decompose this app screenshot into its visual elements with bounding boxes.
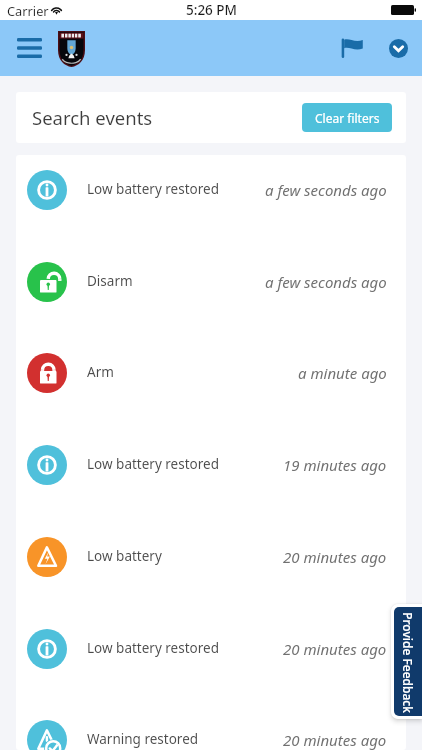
- staticText: Provide Feedback: [400, 612, 416, 713]
- staticText: Disarm: [87, 272, 133, 290]
- staticText: Low battery: [87, 547, 162, 565]
- staticText: Clear filters: [315, 110, 380, 126]
- button[interactable]: Warning restored: [16, 705, 406, 750]
- staticText: Low battery restored: [87, 180, 219, 198]
- staticText: Low battery restored: [87, 639, 219, 657]
- staticText: a few seconds ago: [265, 180, 387, 200]
- staticText: a few seconds ago: [265, 272, 387, 292]
- button[interactable]: Low battery restored: [16, 614, 406, 706]
- button[interactable]: Low battery restored: [16, 155, 406, 247]
- staticText: 20 minutes ago: [283, 639, 387, 659]
- staticText: 20 minutes ago: [283, 730, 387, 750]
- button[interactable]: Provide Feedback: [394, 607, 422, 716]
- button[interactable]: Arm: [16, 338, 406, 430]
- staticText: 5:26 PM: [186, 1, 237, 19]
- button[interactable]: Expand: [378, 28, 418, 68]
- staticText: Low battery restored: [87, 455, 219, 473]
- button[interactable]: Low battery: [16, 522, 406, 614]
- staticText: Search events: [32, 105, 153, 130]
- staticText: 19 minutes ago: [283, 455, 387, 475]
- button[interactable]: Low battery restored: [16, 430, 406, 522]
- button[interactable]: Menu: [8, 28, 50, 68]
- button[interactable]: Disarm: [16, 247, 406, 339]
- staticText: Arm: [87, 363, 114, 381]
- staticText: 20 minutes ago: [283, 547, 387, 567]
- button[interactable]: Flag: [332, 28, 372, 68]
- button[interactable]: Clear filters: [302, 103, 392, 132]
- staticText: Carrier: [7, 2, 49, 19]
- staticText: Warning restored: [87, 730, 199, 748]
- staticText: a minute ago: [298, 363, 387, 383]
